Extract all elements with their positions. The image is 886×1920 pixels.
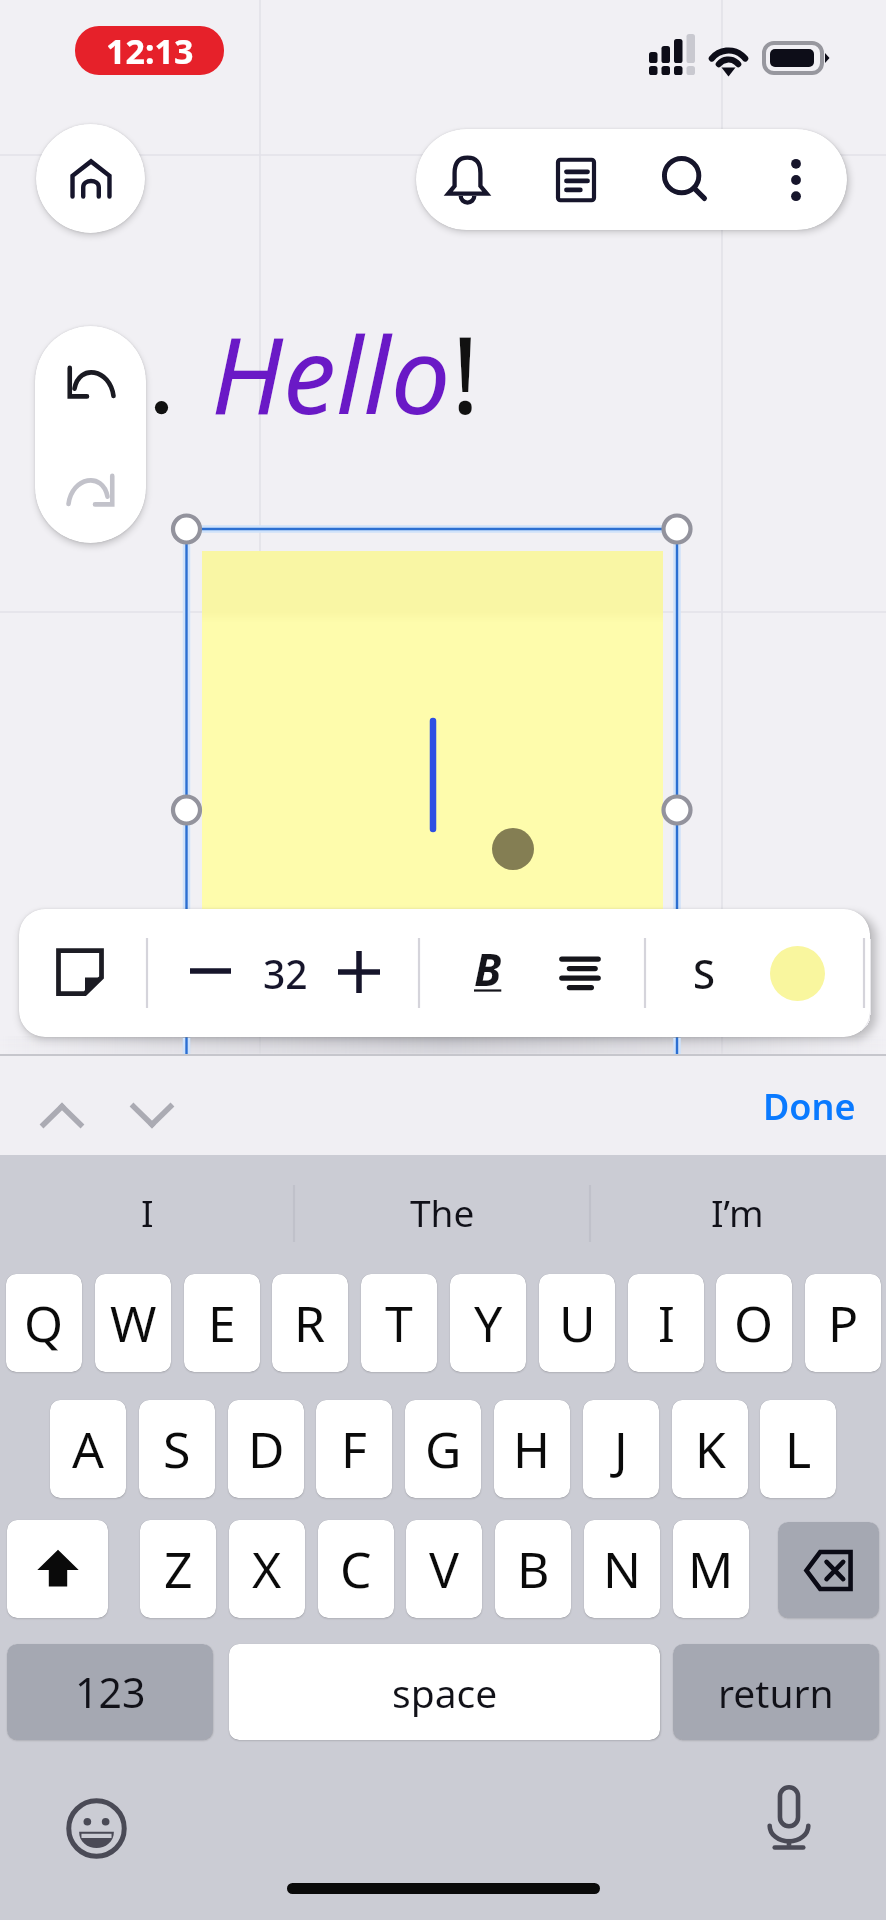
button[interactable]: T: [361, 1274, 437, 1372]
staticText: space: [392, 1666, 498, 1719]
staticText: J: [614, 1415, 628, 1483]
staticText: C: [340, 1535, 372, 1603]
staticText: S: [163, 1415, 191, 1483]
button[interactable]: Increase size: [332, 945, 386, 999]
button[interactable]: K: [672, 1400, 748, 1498]
button[interactable]: Colour: [770, 946, 825, 1001]
staticText: O: [734, 1289, 774, 1357]
button[interactable]: O: [716, 1274, 792, 1372]
button[interactable]: Previous field: [26, 1079, 98, 1151]
staticText: return: [718, 1666, 834, 1719]
staticText: P: [828, 1289, 859, 1357]
button[interactable]: [7, 1520, 108, 1618]
button[interactable]: Search: [640, 129, 730, 230]
staticText: Done: [763, 1082, 856, 1131]
staticText: Q: [24, 1289, 64, 1357]
button[interactable]: Done: [750, 1075, 868, 1137]
staticText: K: [695, 1415, 726, 1483]
button[interactable]: Align: [551, 944, 609, 1002]
staticText: F: [341, 1415, 367, 1483]
button[interactable]: Y: [450, 1274, 526, 1372]
button[interactable]: D: [228, 1400, 304, 1498]
staticText: I: [141, 1187, 154, 1237]
button[interactable]: C: [318, 1520, 394, 1618]
button[interactable]: Undo: [35, 326, 146, 434]
button[interactable]: Text style: [676, 945, 732, 1001]
button[interactable]: V: [406, 1520, 482, 1618]
button[interactable]: Notes: [531, 129, 621, 230]
button[interactable]: J: [583, 1400, 659, 1498]
button[interactable]: Home: [36, 124, 145, 233]
staticText: N: [603, 1535, 641, 1603]
button[interactable]: F: [316, 1400, 392, 1498]
staticText: B: [517, 1535, 550, 1603]
button[interactable]: Next field: [116, 1079, 188, 1151]
button[interactable]: H: [494, 1400, 570, 1498]
staticText: Z: [164, 1535, 193, 1603]
staticText: The: [410, 1187, 475, 1237]
button[interactable]: 123: [7, 1644, 213, 1740]
button[interactable]: I: [628, 1274, 704, 1372]
staticText: U: [559, 1289, 596, 1357]
button[interactable]: X: [229, 1520, 305, 1618]
button[interactable]: Decrease size: [184, 945, 236, 997]
staticText: X: [252, 1535, 282, 1603]
staticText: T: [385, 1289, 413, 1357]
button[interactable]: P: [805, 1274, 881, 1372]
button[interactable]: L: [760, 1400, 836, 1498]
staticText: M: [688, 1535, 734, 1603]
staticText: S: [693, 946, 715, 1000]
button[interactable]: I’m: [590, 1162, 885, 1262]
button[interactable]: Dictation: [757, 1785, 821, 1849]
staticText: G: [425, 1415, 462, 1483]
staticText: B: [474, 939, 502, 997]
button[interactable]: Redo: [35, 434, 146, 542]
button[interactable]: M: [673, 1520, 749, 1618]
button[interactable]: W: [95, 1274, 171, 1372]
staticText: L: [785, 1415, 812, 1483]
button[interactable]: N: [584, 1520, 660, 1618]
button[interactable]: A: [50, 1400, 126, 1498]
button[interactable]: The: [295, 1162, 590, 1262]
staticText: W: [110, 1289, 157, 1357]
staticText: Y: [474, 1289, 503, 1357]
staticText: V: [429, 1535, 459, 1603]
staticText: I’m: [711, 1187, 764, 1237]
button[interactable]: More options: [751, 129, 841, 230]
button[interactable]: E: [184, 1274, 260, 1372]
staticText: A: [72, 1415, 104, 1483]
button[interactable]: return: [673, 1644, 879, 1740]
button[interactable]: space: [229, 1644, 660, 1740]
staticText: 12:13: [106, 28, 194, 74]
staticText: 32: [263, 947, 308, 1000]
staticText: H: [513, 1415, 551, 1483]
button[interactable]: S: [139, 1400, 215, 1498]
button[interactable]: R: [272, 1274, 348, 1372]
staticText: !: [451, 301, 480, 445]
button[interactable]: Note style: [49, 941, 111, 1003]
button[interactable]: G: [405, 1400, 481, 1498]
staticText: Hello: [211, 301, 451, 445]
staticText: E: [208, 1289, 236, 1357]
button[interactable]: [778, 1522, 879, 1618]
staticText: 123: [75, 1664, 146, 1720]
staticText: D: [248, 1415, 285, 1483]
button[interactable]: Q: [6, 1274, 82, 1372]
staticText: R: [294, 1289, 326, 1357]
button[interactable]: U: [539, 1274, 615, 1372]
button[interactable]: Notifications: [422, 129, 512, 230]
button[interactable]: Emoji: [57, 1789, 136, 1868]
button[interactable]: Bold: [459, 939, 517, 997]
staticText: I: [658, 1289, 675, 1357]
button[interactable]: Z: [140, 1520, 216, 1618]
button[interactable]: B: [495, 1520, 571, 1618]
button[interactable]: I: [0, 1162, 295, 1262]
